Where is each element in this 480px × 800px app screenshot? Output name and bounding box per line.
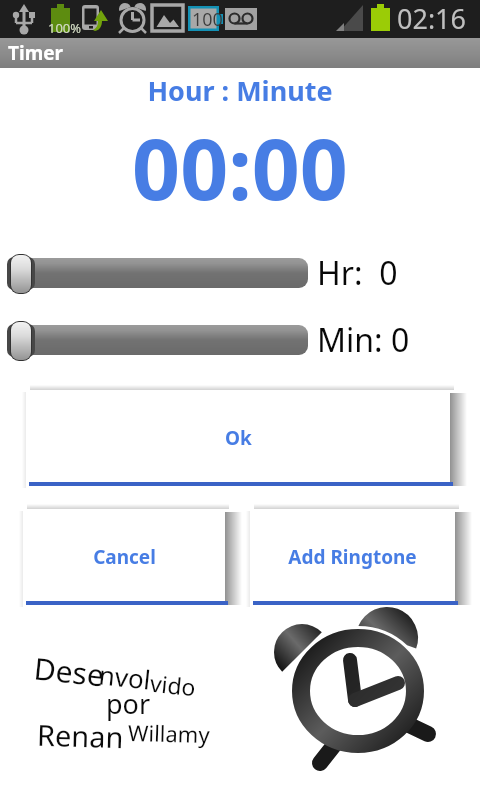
- staticText: Hour : Minute: [0, 72, 480, 109]
- button[interactable]: Ok: [22, 388, 460, 498]
- staticText: 100: [192, 7, 223, 32]
- button[interactable]: Add Ringtone: [246, 507, 465, 617]
- staticText: 00:00: [0, 110, 480, 224]
- other: Alarm clock: [258, 600, 458, 790]
- staticText: Dese: [32, 647, 107, 696]
- button[interactable]: Timer: [0, 38, 480, 68]
- staticText: 100%: [48, 19, 82, 37]
- staticText: vido: [148, 667, 197, 702]
- staticText: Cancel: [93, 544, 156, 570]
- staticText: nvol: [97, 656, 153, 697]
- staticText: 02:16: [397, 0, 467, 37]
- button[interactable]: Hours slider: [0, 250, 480, 296]
- staticText: Timer: [8, 40, 64, 66]
- button[interactable]: Minutes slider: [0, 317, 480, 363]
- staticText: Hr: 0: [317, 251, 398, 295]
- staticText: Renan: [36, 715, 124, 756]
- button[interactable]: Cancel: [19, 507, 235, 617]
- staticText: Ok: [225, 425, 252, 451]
- staticText: Add Ringtone: [288, 544, 417, 570]
- staticText: por: [106, 685, 151, 722]
- staticText: Willamy: [128, 717, 210, 749]
- staticText: Min: 0: [317, 318, 410, 362]
